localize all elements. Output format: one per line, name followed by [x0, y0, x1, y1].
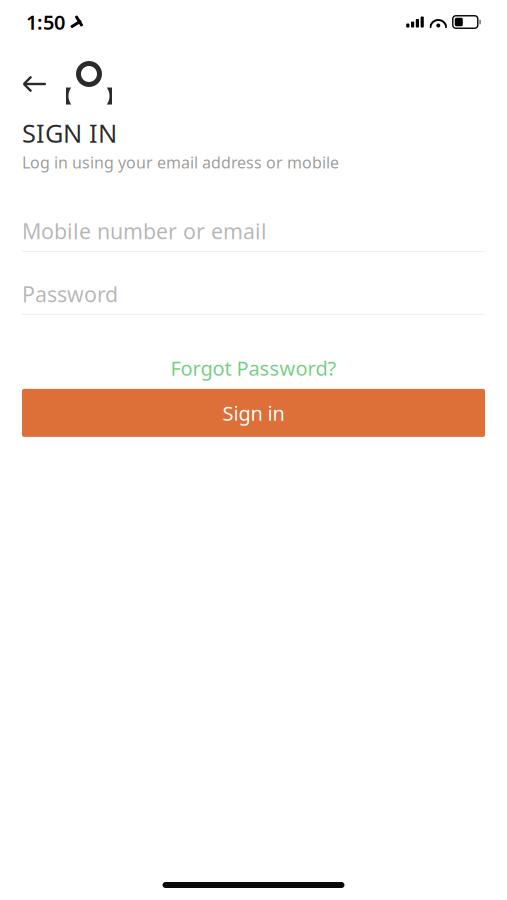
staticText: Mobile number or email [22, 217, 267, 245]
staticText: Forgot Password? [170, 355, 336, 381]
staticText: SIGN IN [22, 116, 117, 150]
staticText: Sign in [222, 400, 284, 426]
staticText: 1:50 [26, 9, 65, 35]
staticText: Password [22, 280, 118, 308]
button[interactable]: Forgot Password? [0, 351, 507, 385]
button[interactable]: Back [20, 69, 50, 99]
staticText: Log in using your email address or mobil… [22, 152, 339, 173]
button[interactable]: Sign in [22, 389, 485, 437]
